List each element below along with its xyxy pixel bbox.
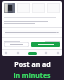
button[interactable]: Post ad — [28, 52, 37, 55]
button[interactable] — [4, 42, 29, 47]
button[interactable] — [4, 30, 60, 35]
button[interactable]: Add photo — [47, 3, 60, 13]
button[interactable]: Tab — [4, 51, 8, 55]
button[interactable]: Add photo — [32, 3, 45, 13]
staticText: in minutes — [13, 71, 51, 80]
staticText: Post an ad — [14, 60, 51, 70]
button[interactable]: Photo — [4, 3, 15, 13]
button[interactable]: Tab — [44, 51, 48, 55]
button[interactable] — [31, 42, 60, 47]
button[interactable]: Add photo — [17, 3, 30, 13]
button[interactable]: Tab — [16, 51, 20, 55]
button[interactable]: Tab — [56, 51, 60, 55]
